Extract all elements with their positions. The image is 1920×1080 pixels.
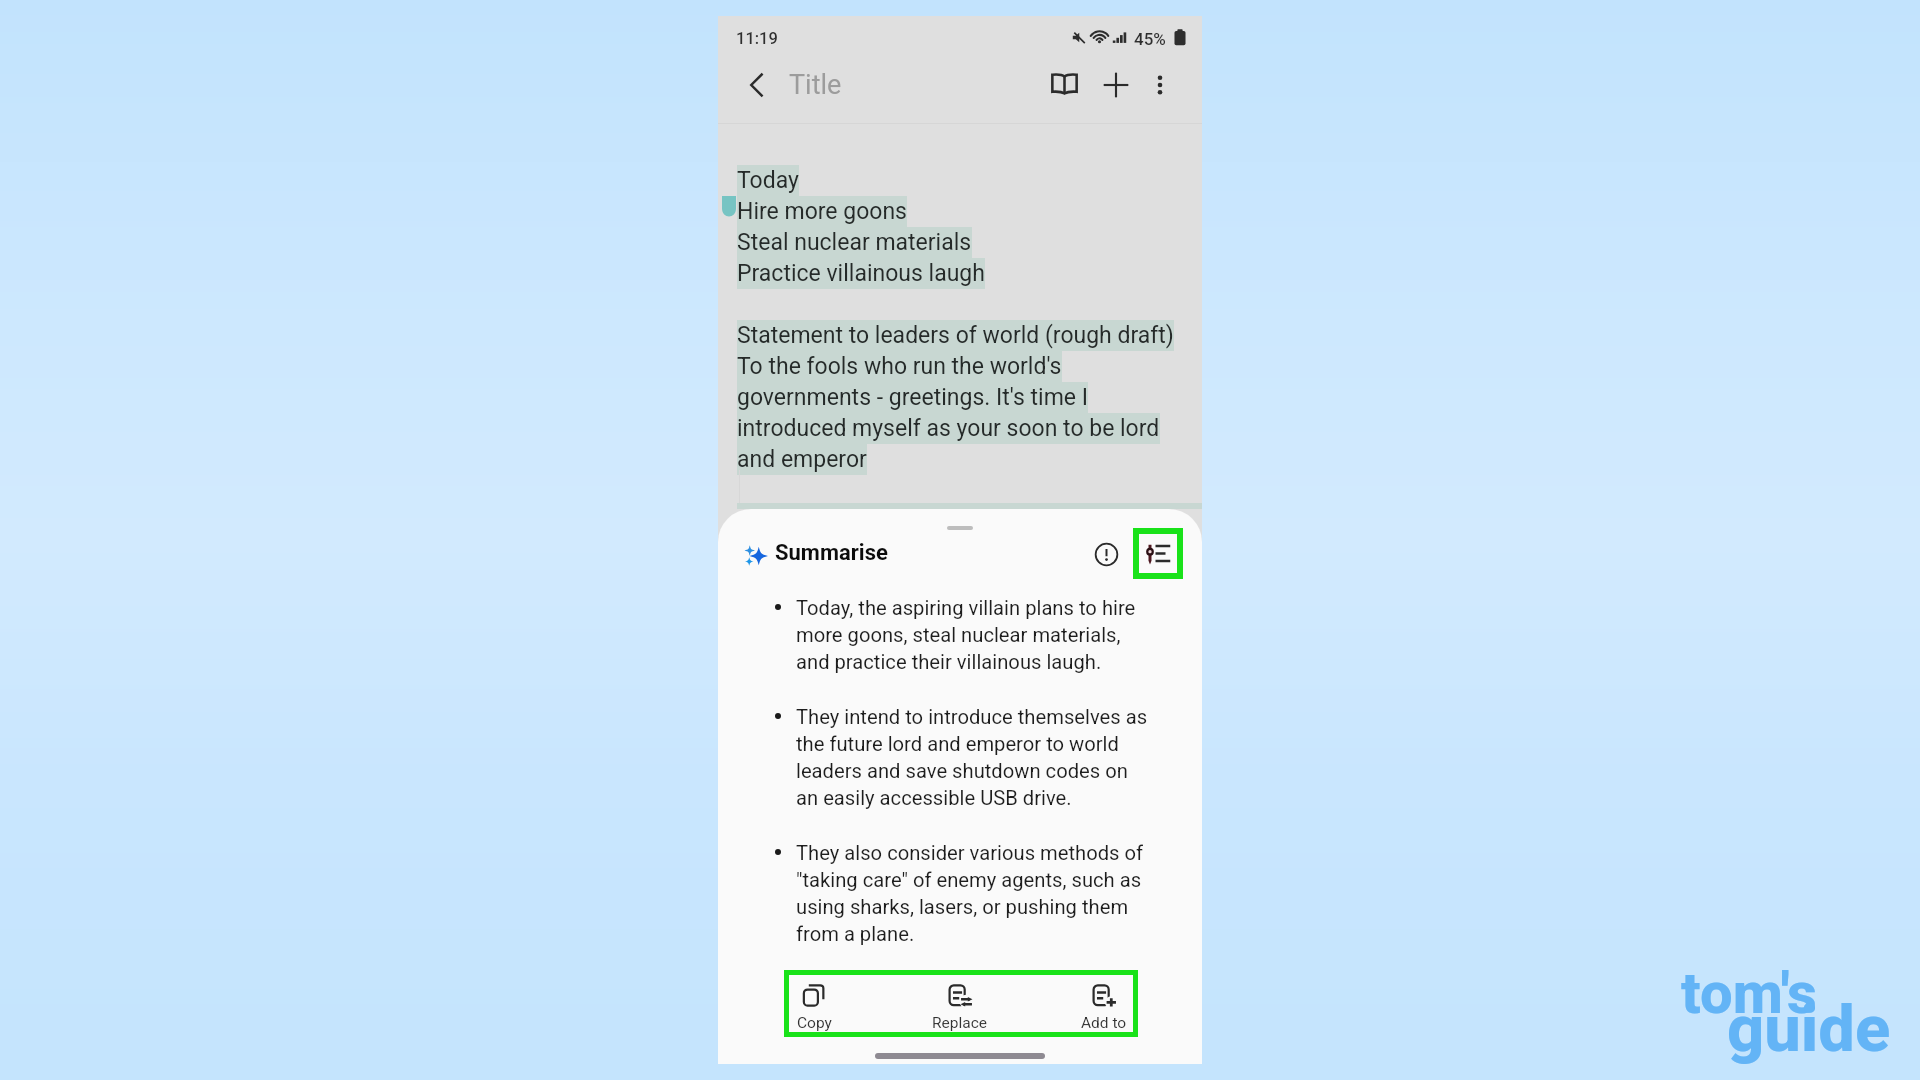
button[interactable]: Add	[1096, 65, 1136, 105]
staticText: using sharks, lasers, or pushing them	[796, 895, 1129, 919]
staticText: Title	[789, 69, 842, 101]
staticText: the future lord and emperor to world	[796, 732, 1119, 756]
button[interactable]: More options	[1140, 65, 1180, 105]
staticText: "taking care" of enemy agents, such as	[796, 868, 1142, 892]
staticText: 11:19	[736, 29, 778, 48]
staticText: Copy	[797, 1014, 832, 1032]
staticText: Statement to leaders of world (rough dra…	[737, 322, 1174, 349]
staticText: Steal nuclear materials	[737, 229, 972, 256]
staticText: Practice villainous laugh	[737, 260, 985, 287]
staticText: from a plane.	[796, 922, 915, 946]
button[interactable]: Summary format	[1139, 534, 1177, 573]
staticText: governments - greetings. It's time I	[737, 384, 1088, 411]
staticText: leaders and save shutdown codes on	[796, 759, 1128, 783]
button[interactable]: Reading mode	[1044, 63, 1084, 103]
staticText: Hire more goons	[737, 198, 907, 225]
button[interactable]: Copy	[778, 979, 850, 1036]
staticText: guide	[1727, 991, 1891, 1067]
staticText: They intend to introduce themselves as	[796, 705, 1148, 729]
staticText: and practice their villainous laugh.	[796, 650, 1102, 674]
staticText: and emperor	[737, 446, 867, 473]
staticText: 45%	[1134, 29, 1166, 49]
staticText: more goons, steal nuclear materials,	[796, 623, 1121, 647]
staticText: Add to	[1081, 1014, 1127, 1032]
staticText: Summarise	[775, 540, 888, 566]
staticText: Today	[737, 167, 799, 194]
staticText: Replace	[932, 1014, 988, 1032]
staticText: To the fools who run the world's	[737, 353, 1062, 380]
staticText: introduced myself as your soon to be lor…	[737, 415, 1160, 442]
button[interactable]: Add to	[1068, 979, 1140, 1036]
staticText: Today, the aspiring villain plans to hir…	[796, 596, 1136, 620]
staticText: They also consider various methods of	[796, 841, 1144, 865]
staticText: an easily accessible USB drive.	[796, 786, 1072, 810]
button[interactable]: Information	[1086, 534, 1126, 574]
staticText: tom's	[1681, 959, 1817, 1027]
button[interactable]: Replace	[924, 979, 996, 1036]
button[interactable]: Back	[737, 65, 777, 105]
